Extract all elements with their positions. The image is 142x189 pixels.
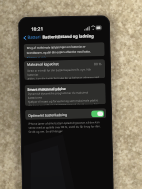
staticText: Få mere at vide…	[27, 55, 49, 58]
staticText: Dette er et mål for din batterikapacitet…	[27, 67, 102, 80]
staticText: Brug af maksimale oplysninger om batteri…	[27, 44, 102, 50]
staticText: 10:21	[31, 25, 43, 32]
staticText: iPhone lærer af dine batteri-opladningsv…	[28, 120, 102, 134]
button[interactable]: Få mere at vide…	[27, 55, 49, 58]
staticText: brandstrøm, og din din orders effektive …	[27, 49, 92, 55]
staticText: Maksimal kapacitet	[27, 61, 59, 67]
staticText: Batteri	[27, 34, 41, 41]
staticText: Smart maksimal ydelse	[27, 86, 67, 91]
staticText: 80 %	[94, 61, 102, 65]
staticText: Batteritilstand og ladning	[42, 33, 94, 39]
staticText: Dynamisk dynamiske programmer du maksima…	[28, 90, 103, 106]
button[interactable]: Maksimal kapacitet	[24, 59, 105, 68]
button[interactable]: Optimeret batteriladning, slået til	[91, 110, 104, 117]
button[interactable]: Optimeret batteriladning	[25, 108, 106, 120]
staticText: Optimeret batteriladning	[28, 112, 67, 117]
button[interactable]: Batteri	[22, 33, 42, 42]
